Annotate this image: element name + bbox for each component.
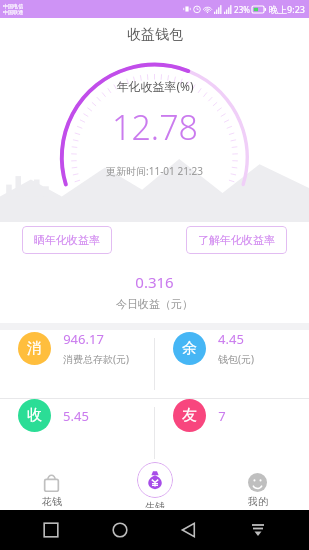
staticText: 余 <box>182 339 197 358</box>
staticText: 消 <box>27 339 42 358</box>
other: 我的 <box>248 473 267 492</box>
staticText: 4.45 <box>218 330 244 348</box>
staticText: 我的 <box>248 495 268 508</box>
button[interactable]: Recents <box>40 519 62 541</box>
staticText: 晒年化收益率 <box>34 233 100 247</box>
staticText: 更新时间:11-01 21:23 <box>106 164 203 178</box>
staticText: 友 <box>182 406 197 425</box>
button[interactable]: 晒年化收益率 <box>22 226 112 254</box>
button[interactable]: 友 <box>155 399 309 432</box>
staticText: 946.17 <box>63 330 104 348</box>
other: 生钱 <box>137 462 173 498</box>
button[interactable]: 了解年化收益率 <box>186 226 287 254</box>
staticText: 23% <box>234 4 250 15</box>
button[interactable]: 花钱 <box>0 473 103 510</box>
staticText: 5.45 <box>63 407 89 425</box>
button[interactable]: 生钱 <box>137 462 173 510</box>
button[interactable]: 消 <box>0 330 154 366</box>
staticText: 钱包(元) <box>218 352 254 366</box>
button[interactable]: 余 <box>155 330 309 366</box>
staticText: 0.316 <box>135 272 174 292</box>
button[interactable]: Home <box>109 519 131 541</box>
other: 花钱 <box>42 473 61 492</box>
staticText: 年化收益率(%) <box>116 78 194 94</box>
staticText: 中国联通 <box>3 9 23 15</box>
button[interactable]: Hide <box>247 519 269 541</box>
staticText: 晚上9:23 <box>269 3 305 15</box>
staticText: 收 <box>27 406 42 425</box>
staticText: 消费总存款(元) <box>63 352 129 366</box>
staticText: 中国电信 <box>3 3 23 9</box>
staticText: 了解年化收益率 <box>198 233 275 247</box>
button[interactable]: Back <box>178 519 200 541</box>
staticText: 收益钱包 <box>127 26 183 44</box>
button[interactable]: 我的 <box>206 473 309 510</box>
staticText: 生钱 <box>145 500 165 508</box>
staticText: 12.78 <box>112 104 198 150</box>
staticText: 今日收益（元） <box>116 297 193 311</box>
staticText: 花钱 <box>42 495 62 508</box>
button[interactable]: 收 <box>0 399 154 432</box>
staticText: 7 <box>218 407 226 425</box>
